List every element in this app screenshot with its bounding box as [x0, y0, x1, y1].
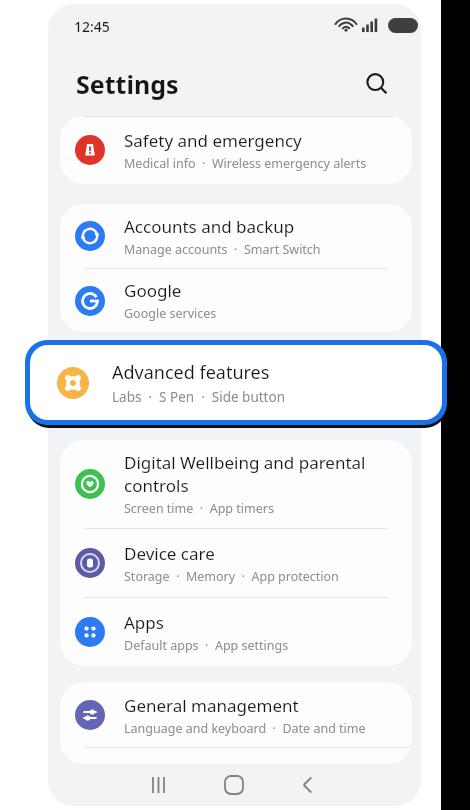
- button[interactable]: Apps: [60, 598, 412, 666]
- button[interactable]: Safety and emergency: [60, 116, 412, 184]
- staticText: Google services: [124, 305, 217, 322]
- button[interactable]: Recents: [132, 766, 188, 804]
- button[interactable]: Google: [60, 269, 412, 332]
- staticText: Google: [124, 279, 182, 302]
- button[interactable]: Search: [357, 64, 397, 104]
- staticText: Manage accounts · Smart Switch: [124, 241, 321, 258]
- button[interactable]: Back: [280, 766, 336, 804]
- staticText: Default apps · App settings: [124, 637, 289, 654]
- staticText: Storage · Memory · App protection: [124, 568, 339, 585]
- staticText: Accounts and backup: [124, 215, 295, 238]
- staticText: Advanced features: [112, 360, 270, 385]
- button[interactable]: Digital Wellbeing and parental: [60, 440, 412, 528]
- staticText: Digital Wellbeing and parental: [124, 451, 366, 474]
- staticText: Medical info · Wireless emergency alerts: [124, 155, 367, 172]
- staticText: Language and keyboard · Date and time: [124, 720, 366, 737]
- staticText: Labs · S Pen · Side button: [112, 388, 286, 406]
- button[interactable]: Advanced features: [25, 340, 447, 425]
- staticText: Settings: [76, 67, 179, 101]
- staticText: Screen time · App timers: [124, 500, 274, 517]
- button[interactable]: Home: [206, 766, 262, 804]
- button[interactable]: Accounts and backup: [60, 204, 412, 268]
- staticText: General management: [124, 694, 299, 717]
- button[interactable]: General management: [60, 682, 412, 748]
- staticText: controls: [124, 474, 189, 497]
- button[interactable]: Device care: [60, 529, 412, 597]
- staticText: Safety and emergency: [124, 129, 302, 152]
- staticText: Apps: [124, 611, 164, 634]
- staticText: 12:45: [74, 17, 110, 36]
- staticText: Device care: [124, 542, 215, 565]
